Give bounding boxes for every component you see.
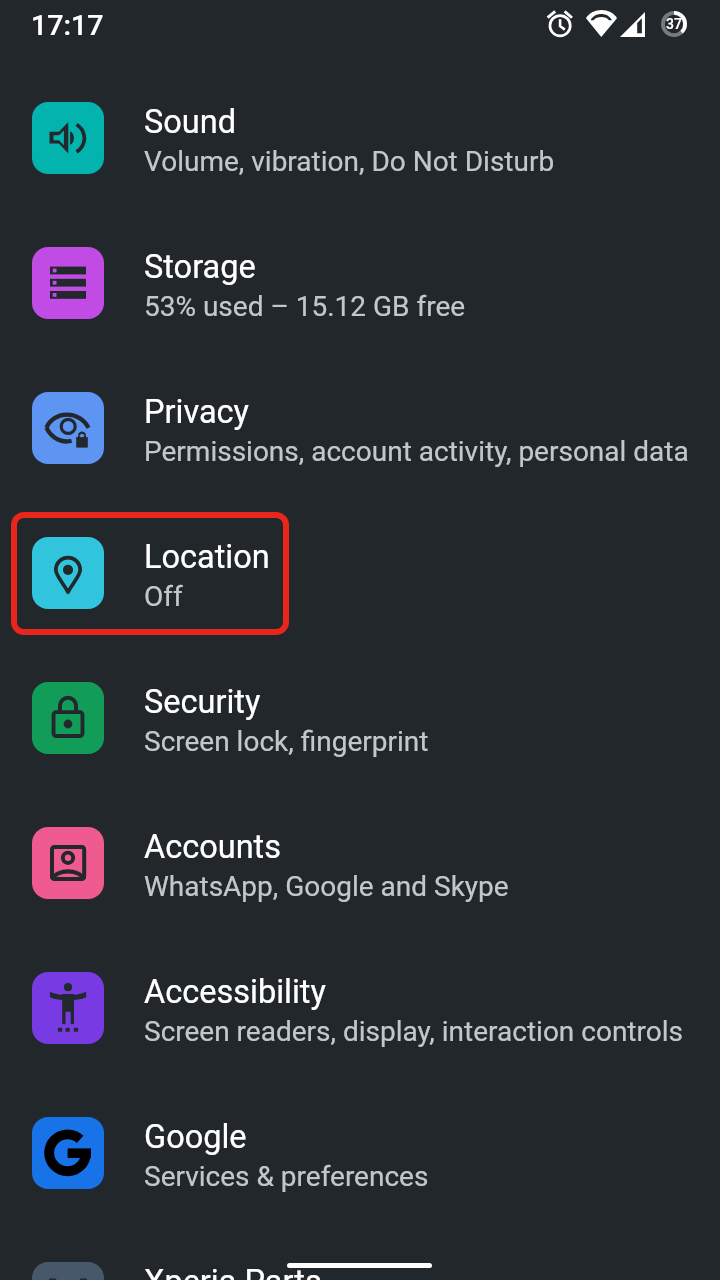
- button[interactable]: Accessibility: [0, 944, 720, 1089]
- staticText: Location: [144, 538, 270, 576]
- button[interactable]: Accounts: [0, 799, 720, 944]
- staticText: Google: [144, 1118, 247, 1156]
- button[interactable]: Sound: [0, 74, 720, 219]
- other: Battery 37 percent: [661, 11, 687, 37]
- staticText: 53% used – 15.12 GB free: [144, 290, 466, 323]
- staticText: Sound: [144, 103, 237, 141]
- other: Wi-Fi: [586, 10, 617, 37]
- staticText: Accessibility: [144, 973, 326, 1011]
- staticText: Accounts: [144, 828, 282, 866]
- staticText: Screen lock, fingerprint: [144, 725, 429, 758]
- staticText: Services & preferences: [144, 1160, 429, 1193]
- staticText: Screen readers, display, interaction con…: [144, 1015, 683, 1048]
- staticText: Off: [144, 580, 183, 613]
- button[interactable]: Storage: [0, 219, 720, 364]
- staticText: 17:17: [31, 9, 104, 42]
- button[interactable]: Xperia Parts: [0, 1234, 720, 1280]
- staticText: WhatsApp, Google and Skype: [144, 870, 509, 903]
- button[interactable]: Location: [0, 509, 720, 654]
- staticText: Volume, vibration, Do Not Disturb: [144, 145, 555, 178]
- button[interactable]: Privacy: [0, 364, 720, 509]
- staticText: Security: [144, 683, 261, 721]
- button[interactable]: Security: [0, 654, 720, 799]
- staticText: 37: [666, 16, 682, 32]
- staticText: Xperia Parts: [144, 1263, 322, 1280]
- other: Mobile signal: [620, 12, 645, 37]
- staticText: Permissions, account activity, personal …: [144, 435, 689, 468]
- staticText: Privacy: [144, 393, 249, 431]
- button[interactable]: Google: [0, 1089, 720, 1234]
- other: Alarm set: [547, 10, 572, 38]
- staticText: Storage: [144, 248, 256, 286]
